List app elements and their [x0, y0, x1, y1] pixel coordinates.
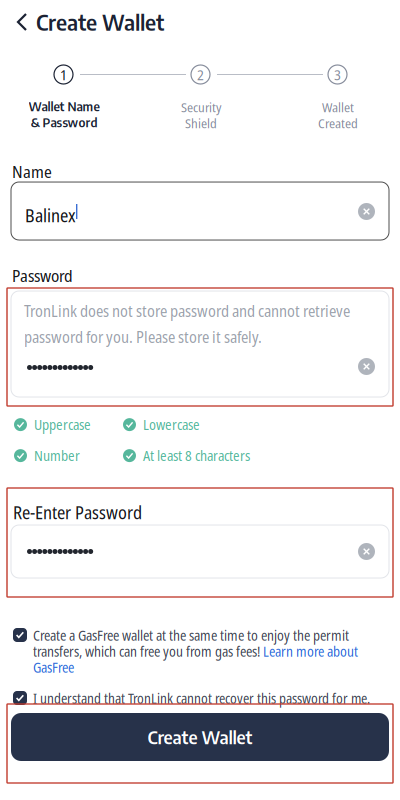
- staticText: & Password: [30, 114, 97, 130]
- staticText: Name: [12, 160, 52, 183]
- staticText: Security: [181, 98, 221, 116]
- button[interactable]: GasFree: [33, 658, 74, 677]
- staticText: Create Wallet: [147, 726, 252, 748]
- staticText: 3: [334, 64, 341, 84]
- staticText: transfers, which can free you from gas f…: [33, 642, 263, 661]
- staticText: Wallet: [322, 98, 354, 116]
- staticText: Learn more about: [263, 642, 358, 661]
- staticText: Uppercase: [34, 415, 91, 434]
- staticText: GasFree: [33, 658, 74, 677]
- button[interactable]: Clear text: [358, 358, 375, 375]
- staticText: 2: [197, 64, 204, 84]
- staticText: Number: [34, 446, 80, 465]
- staticText: Wallet Name: [28, 98, 99, 114]
- staticText: Create a GasFree wallet at the same time…: [33, 626, 349, 645]
- staticText: I understand that TronLink cannot recove…: [33, 689, 370, 708]
- staticText: TronLink does not store password and can…: [24, 300, 350, 322]
- staticText: Lowercase: [143, 415, 200, 434]
- button[interactable]: I understand: [13, 691, 27, 705]
- staticText: Password: [12, 264, 73, 287]
- staticText: Balinex: [25, 203, 76, 227]
- staticText: At least 8 characters: [143, 446, 250, 465]
- button[interactable]: Back: [9, 5, 35, 39]
- button[interactable]: Create Wallet: [11, 713, 389, 761]
- button[interactable]: Clear text: [358, 543, 375, 560]
- staticText: password for you. Please store it safely…: [24, 326, 262, 348]
- button[interactable]: Create a GasFree wallet: [13, 628, 27, 642]
- staticText: Re-Enter Password: [13, 500, 142, 524]
- staticText: 1: [60, 64, 67, 84]
- staticText: Create Wallet: [36, 8, 164, 35]
- button[interactable]: Learn more about: [263, 642, 358, 661]
- staticText: Created: [318, 114, 358, 132]
- staticText: Shield: [185, 114, 217, 132]
- button[interactable]: Clear text: [358, 203, 375, 220]
